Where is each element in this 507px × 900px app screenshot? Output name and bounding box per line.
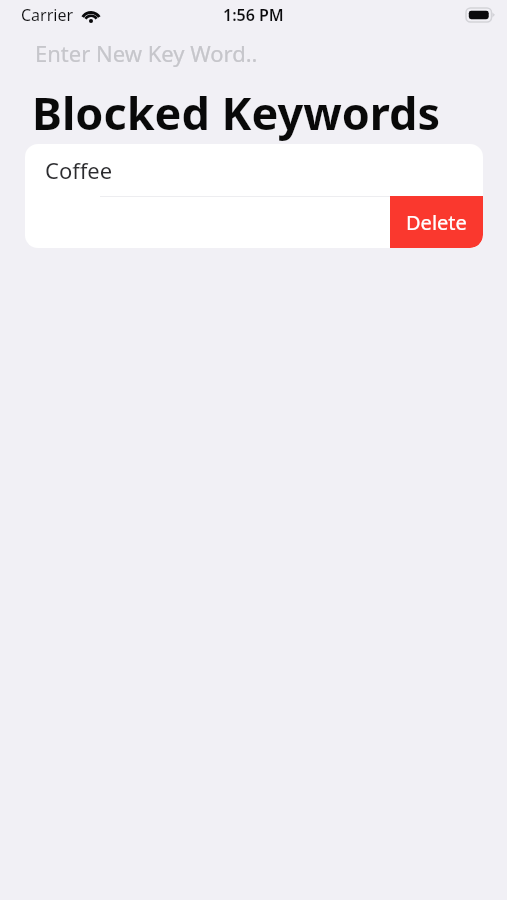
staticText: Blocked Keywords [32, 82, 441, 143]
button[interactable]: Delete [390, 196, 483, 248]
other: Wi-Fi [81, 8, 101, 23]
staticText: Coffee [45, 155, 113, 185]
staticText: Enter New Key Word.. [35, 38, 258, 68]
button[interactable]: Coffee [25, 144, 483, 196]
staticText: Carrier [21, 4, 74, 26]
button[interactable]: Enter New Key Word.. [0, 33, 507, 73]
other: Battery full [466, 8, 495, 22]
staticText: Delete [406, 209, 467, 236]
staticText: 1:56 PM [223, 4, 284, 26]
